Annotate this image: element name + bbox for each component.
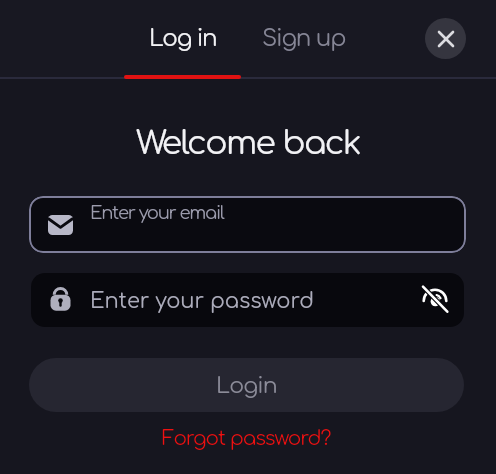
button[interactable]: Enter your email bbox=[29, 196, 466, 253]
staticText: Forgot password? bbox=[162, 427, 331, 449]
button[interactable]: Login bbox=[29, 358, 464, 412]
staticText: Enter your password bbox=[90, 289, 314, 312]
staticText: Enter your email bbox=[90, 203, 224, 223]
button[interactable] bbox=[425, 18, 466, 59]
button[interactable]: Sign up bbox=[243, 0, 364, 79]
button[interactable]: Forgot password? bbox=[162, 427, 331, 449]
button[interactable] bbox=[412, 277, 458, 323]
button[interactable]: Enter your password bbox=[31, 273, 464, 327]
staticText: Sign up bbox=[262, 26, 346, 52]
staticText: Welcome back bbox=[136, 125, 361, 162]
staticText: Login bbox=[216, 374, 277, 399]
staticText: Log in bbox=[149, 26, 217, 52]
button[interactable]: Log in bbox=[122, 0, 243, 79]
